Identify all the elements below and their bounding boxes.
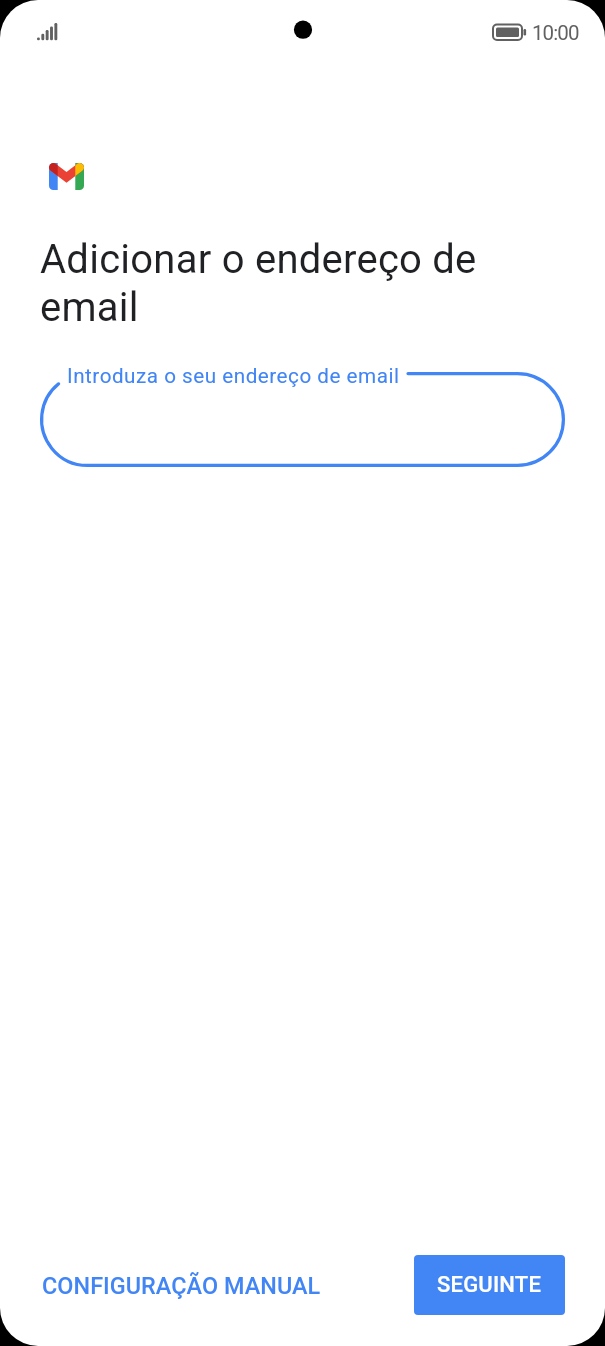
staticText: Adicionar o endereço de email — [40, 236, 510, 331]
other: Mobile signal strength — [37, 20, 59, 42]
staticText: 10:00 — [532, 21, 579, 45]
staticText: Introduza o seu endereço de email — [67, 364, 400, 388]
button[interactable]: SEGUINTE — [414, 1255, 565, 1315]
other: Battery full — [492, 23, 528, 41]
button[interactable]: CONFIGURAÇÃO MANUAL — [26, 1261, 337, 1310]
staticText: CONFIGURAÇÃO MANUAL — [42, 1272, 321, 1299]
button[interactable]: Introduza o seu endereço de email — [40, 372, 565, 467]
staticText: SEGUINTE — [437, 1272, 542, 1298]
other: Gmail — [49, 163, 84, 190]
